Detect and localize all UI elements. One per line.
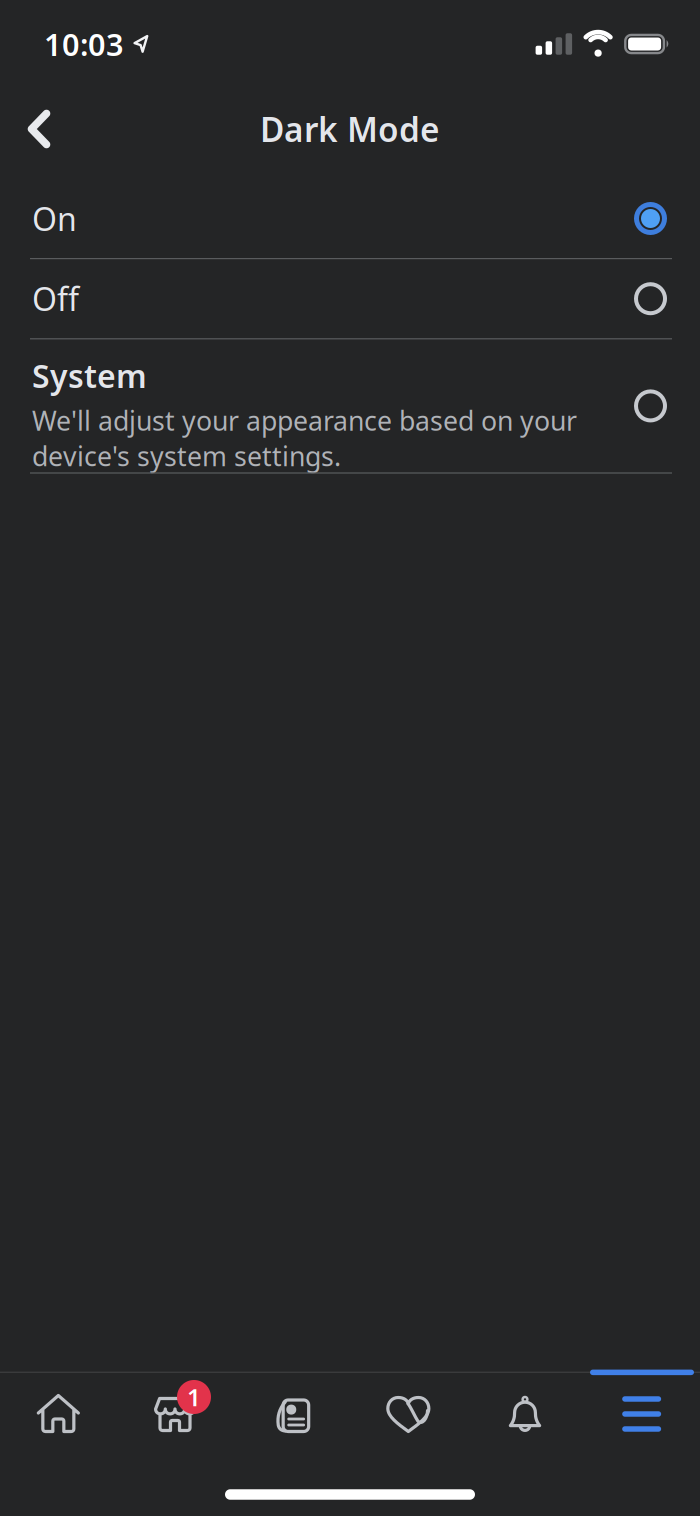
button[interactable]: Menu	[583, 1374, 700, 1454]
staticText: Off	[32, 277, 79, 320]
staticText: device's system settings.	[32, 438, 341, 473]
button[interactable]: Marketplace	[117, 1374, 233, 1454]
button[interactable]: Notifications	[467, 1374, 583, 1454]
button[interactable]: Back	[0, 88, 70, 170]
staticText: On	[32, 197, 77, 240]
button[interactable]: On	[0, 179, 700, 258]
staticText: 1	[187, 1381, 201, 1413]
button[interactable]: News Feed	[233, 1374, 350, 1454]
staticText: Dark Mode	[260, 107, 440, 151]
button[interactable]: Off	[0, 259, 700, 338]
button[interactable]: Home	[0, 1374, 117, 1454]
staticText: System	[32, 354, 147, 397]
staticText: 10:03	[44, 24, 124, 64]
button[interactable]: System	[0, 339, 700, 472]
staticText: We'll adjust your appearance based on yo…	[32, 403, 577, 438]
button[interactable]: Dating	[350, 1374, 467, 1454]
